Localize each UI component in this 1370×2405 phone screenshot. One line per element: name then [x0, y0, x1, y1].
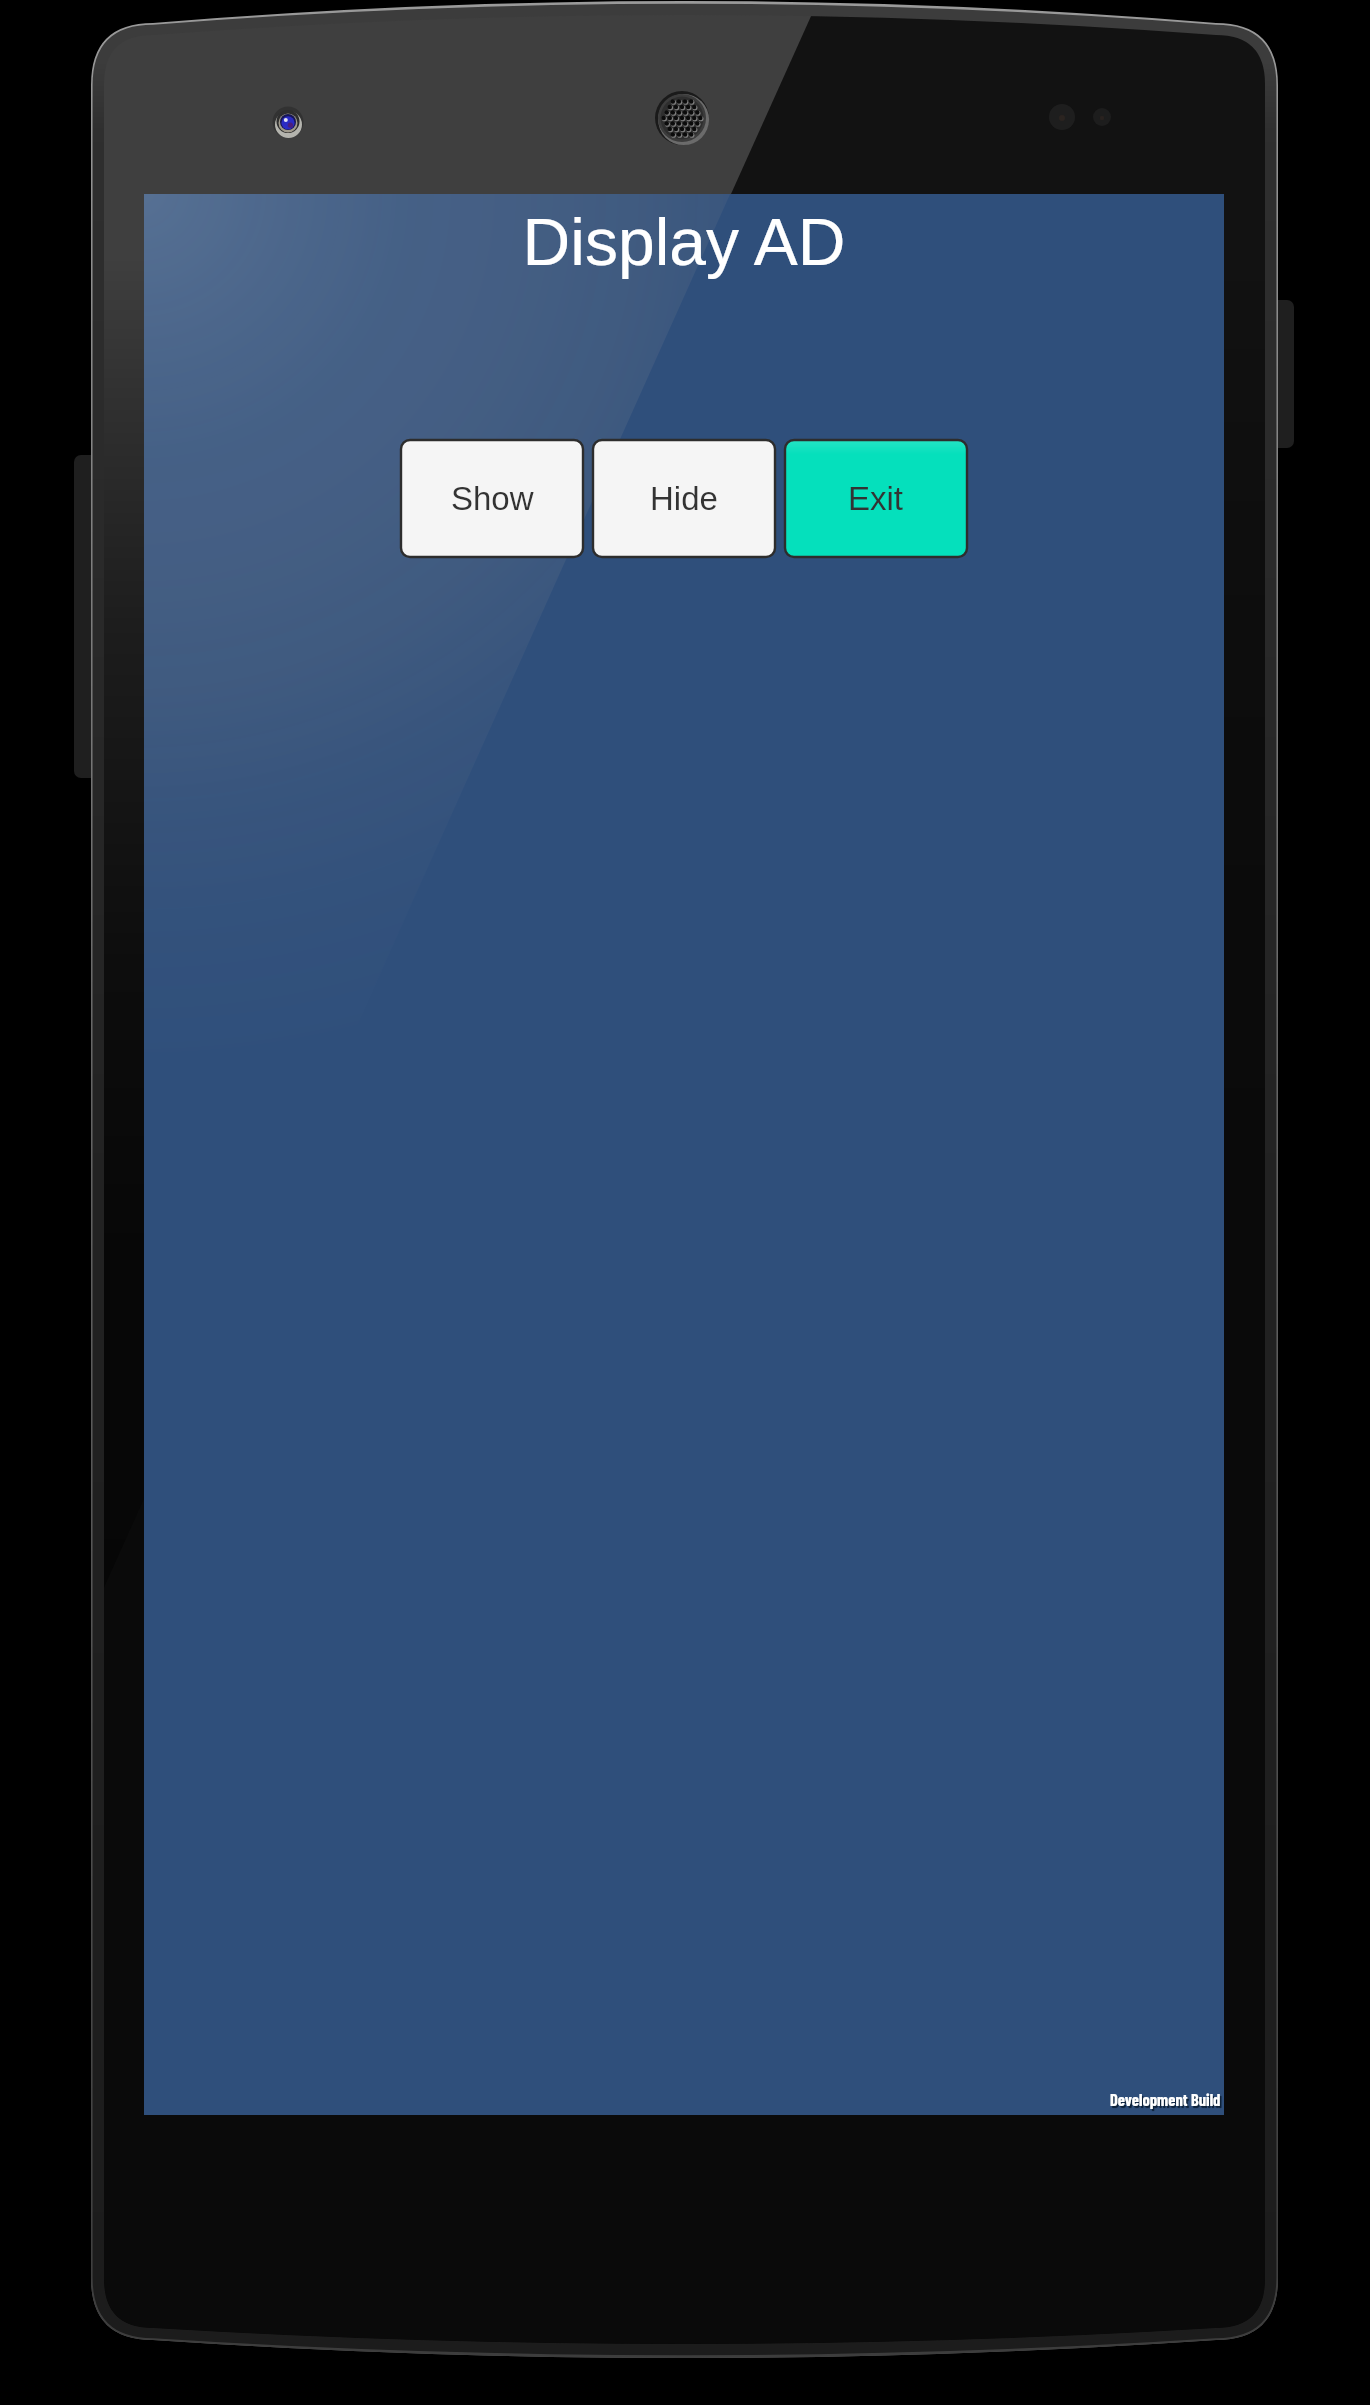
- button[interactable]: Exit: [784, 439, 968, 558]
- staticText: Display AD: [144, 205, 1224, 2115]
- staticText: Hide: [650, 480, 718, 517]
- button[interactable]: Hide: [592, 439, 776, 558]
- button[interactable]: Show: [400, 439, 584, 558]
- staticText: Show: [451, 480, 534, 517]
- staticText: Exit: [848, 480, 904, 517]
- staticText: Development Build: [1110, 2089, 1221, 2109]
